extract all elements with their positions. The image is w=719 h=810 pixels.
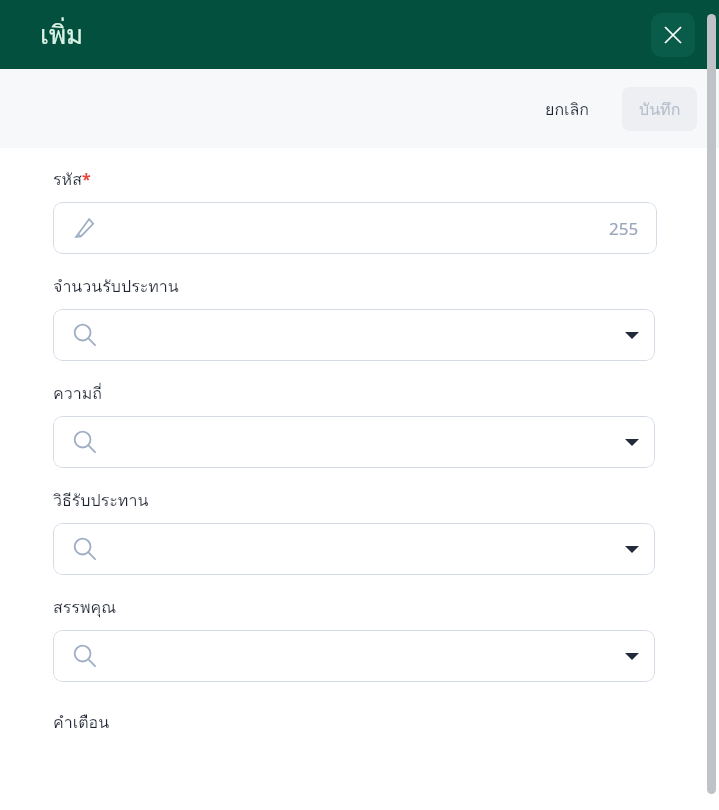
button[interactable]: 255 (53, 202, 657, 254)
staticText: สรรพคุณ (53, 595, 117, 620)
staticText: บันทึก (639, 97, 681, 122)
staticText: ยกเลิก (545, 97, 590, 122)
staticText: วิธีรับประทาน (53, 488, 149, 513)
button[interactable]: Close (651, 13, 695, 57)
staticText: ความถี่ (53, 381, 102, 406)
button[interactable]: บันทึก (622, 87, 697, 131)
button[interactable]: ยกเลิก (535, 89, 600, 130)
staticText: 255 (609, 217, 639, 240)
staticText: เพิ่ม (40, 14, 84, 55)
button[interactable] (53, 630, 655, 682)
button[interactable] (53, 416, 655, 468)
staticText: รหัส* (53, 167, 91, 192)
staticText: คำเตือน (53, 710, 110, 735)
staticText: จำนวนรับประทาน (53, 274, 179, 299)
button[interactable] (53, 309, 655, 361)
button[interactable] (53, 523, 655, 575)
